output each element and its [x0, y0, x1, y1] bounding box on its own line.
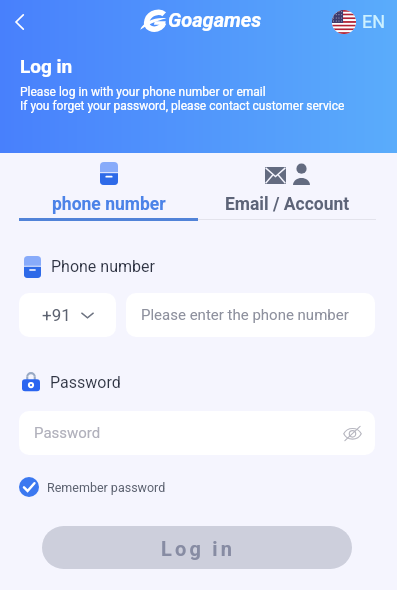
staticText: Please enter the phone number	[141, 306, 349, 324]
staticText: Log in	[161, 537, 236, 560]
staticText: Remember password	[47, 480, 166, 495]
staticText: Password	[34, 424, 101, 442]
staticText: If you forget your password, please cont…	[20, 99, 345, 113]
button[interactable]: Show password	[342, 423, 362, 443]
button[interactable]: Back	[4, 7, 34, 37]
button[interactable]: phone number	[19, 155, 198, 217]
button[interactable]: Password	[19, 411, 375, 455]
staticText: Phone number	[51, 257, 155, 276]
button[interactable]: Remember password	[19, 477, 166, 497]
button[interactable]: Please enter the phone number	[126, 293, 375, 337]
staticText: Please log in with your phone number or …	[20, 85, 266, 99]
staticText: EN	[362, 11, 386, 32]
button[interactable]: EN	[332, 10, 386, 34]
button[interactable]: +91	[19, 293, 116, 337]
staticText: +91	[42, 305, 71, 325]
staticText: phone number	[52, 194, 166, 215]
staticText: Goagames	[168, 8, 262, 31]
button[interactable]: Email / Account	[198, 155, 376, 217]
staticText: Password	[50, 373, 121, 392]
staticText: Email / Account	[225, 194, 350, 215]
button[interactable]: Log in	[42, 526, 352, 569]
staticText: Log in	[20, 55, 73, 77]
